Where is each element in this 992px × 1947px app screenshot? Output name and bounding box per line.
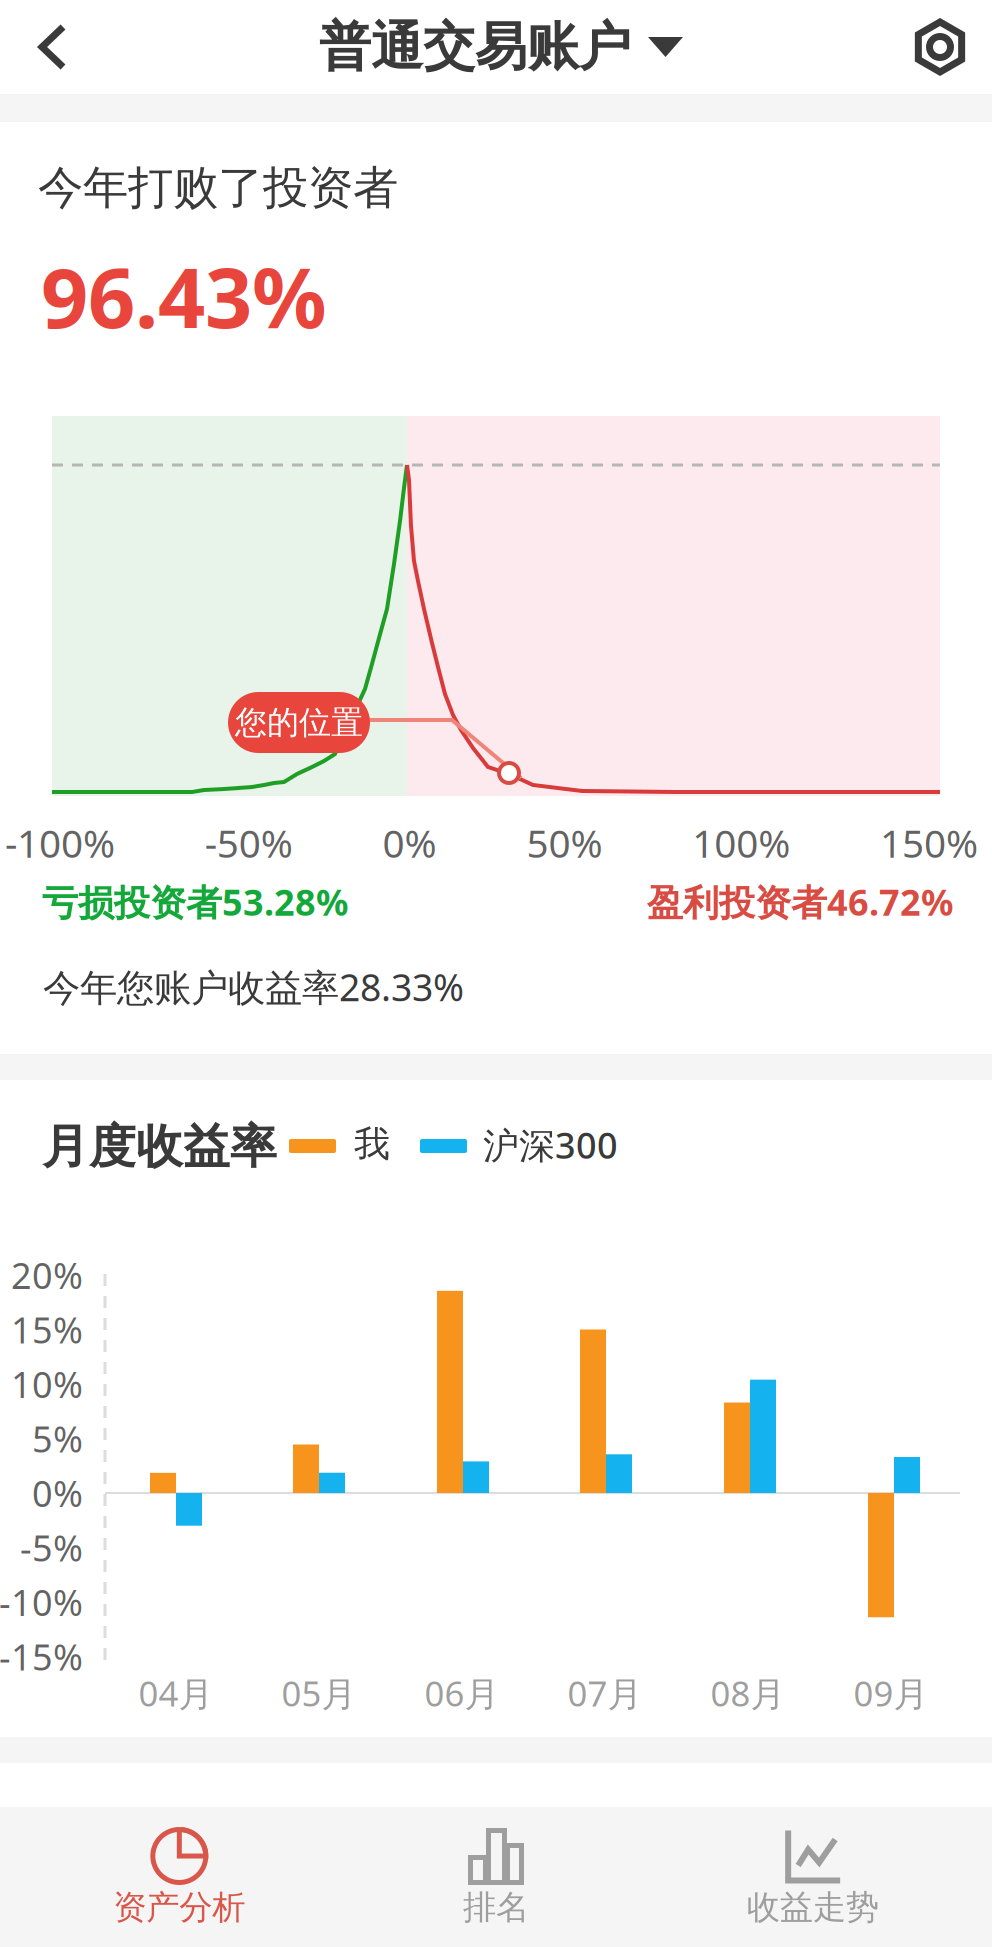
staticText: 资产分析 bbox=[113, 1887, 245, 1928]
staticText: 05月 bbox=[281, 1670, 356, 1716]
staticText: 今年您账户收益率28.33% bbox=[43, 962, 464, 1012]
staticText: 5% bbox=[32, 1415, 83, 1462]
staticText: 09月 bbox=[853, 1670, 928, 1716]
staticText: -10% bbox=[0, 1578, 83, 1626]
button[interactable]: 排名 bbox=[338, 1807, 654, 1947]
staticText: 50% bbox=[526, 817, 602, 868]
staticText: 排名 bbox=[463, 1887, 529, 1928]
staticText: 0% bbox=[32, 1469, 83, 1517]
staticText: 盈利投资者46.72% bbox=[647, 878, 953, 926]
staticText: 月度收益率 bbox=[42, 1118, 277, 1175]
staticText: 07月 bbox=[567, 1670, 642, 1716]
staticText: -100% bbox=[5, 817, 115, 868]
button[interactable]: Settings bbox=[889, 2, 992, 92]
staticText: -15% bbox=[0, 1633, 83, 1680]
staticText: 20% bbox=[11, 1251, 83, 1299]
staticText: 亏损投资者53.28% bbox=[42, 878, 348, 926]
staticText: 收益走势 bbox=[747, 1887, 879, 1928]
staticText: 我 bbox=[354, 1122, 390, 1166]
staticText: 15% bbox=[11, 1306, 83, 1353]
staticText: 今年打败了投资者 bbox=[38, 160, 398, 216]
staticText: 普通交易账户 bbox=[319, 15, 631, 79]
staticText: 0% bbox=[383, 817, 437, 868]
staticText: -5% bbox=[20, 1524, 83, 1571]
staticText: 06月 bbox=[424, 1670, 499, 1716]
staticText: 150% bbox=[880, 817, 978, 868]
button[interactable]: 资产分析 bbox=[21, 1807, 338, 1947]
button[interactable]: 普通交易账户 bbox=[314, 15, 678, 79]
staticText: 您的位置 bbox=[235, 703, 363, 742]
staticText: 100% bbox=[692, 817, 790, 868]
button[interactable]: 收益走势 bbox=[654, 1807, 971, 1947]
staticText: 10% bbox=[11, 1360, 83, 1408]
staticText: 08月 bbox=[710, 1670, 785, 1716]
staticText: -50% bbox=[205, 817, 293, 868]
staticText: 沪深300 bbox=[483, 1121, 618, 1169]
button[interactable]: Back bbox=[0, 2, 92, 92]
staticText: 96.43% bbox=[41, 241, 327, 351]
staticText: 04月 bbox=[138, 1670, 213, 1716]
